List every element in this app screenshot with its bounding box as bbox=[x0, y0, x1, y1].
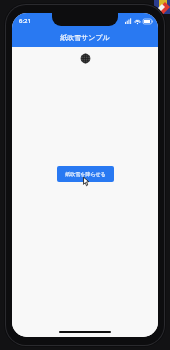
button[interactable]: 紙吹雪を降らせる bbox=[57, 166, 114, 182]
staticText: 6:21 bbox=[19, 17, 31, 25]
staticText: 紙吹雪を降らせる bbox=[65, 171, 106, 177]
button[interactable]: Globe bbox=[81, 54, 90, 63]
staticText: 紙吹雪サンプル bbox=[60, 33, 110, 42]
